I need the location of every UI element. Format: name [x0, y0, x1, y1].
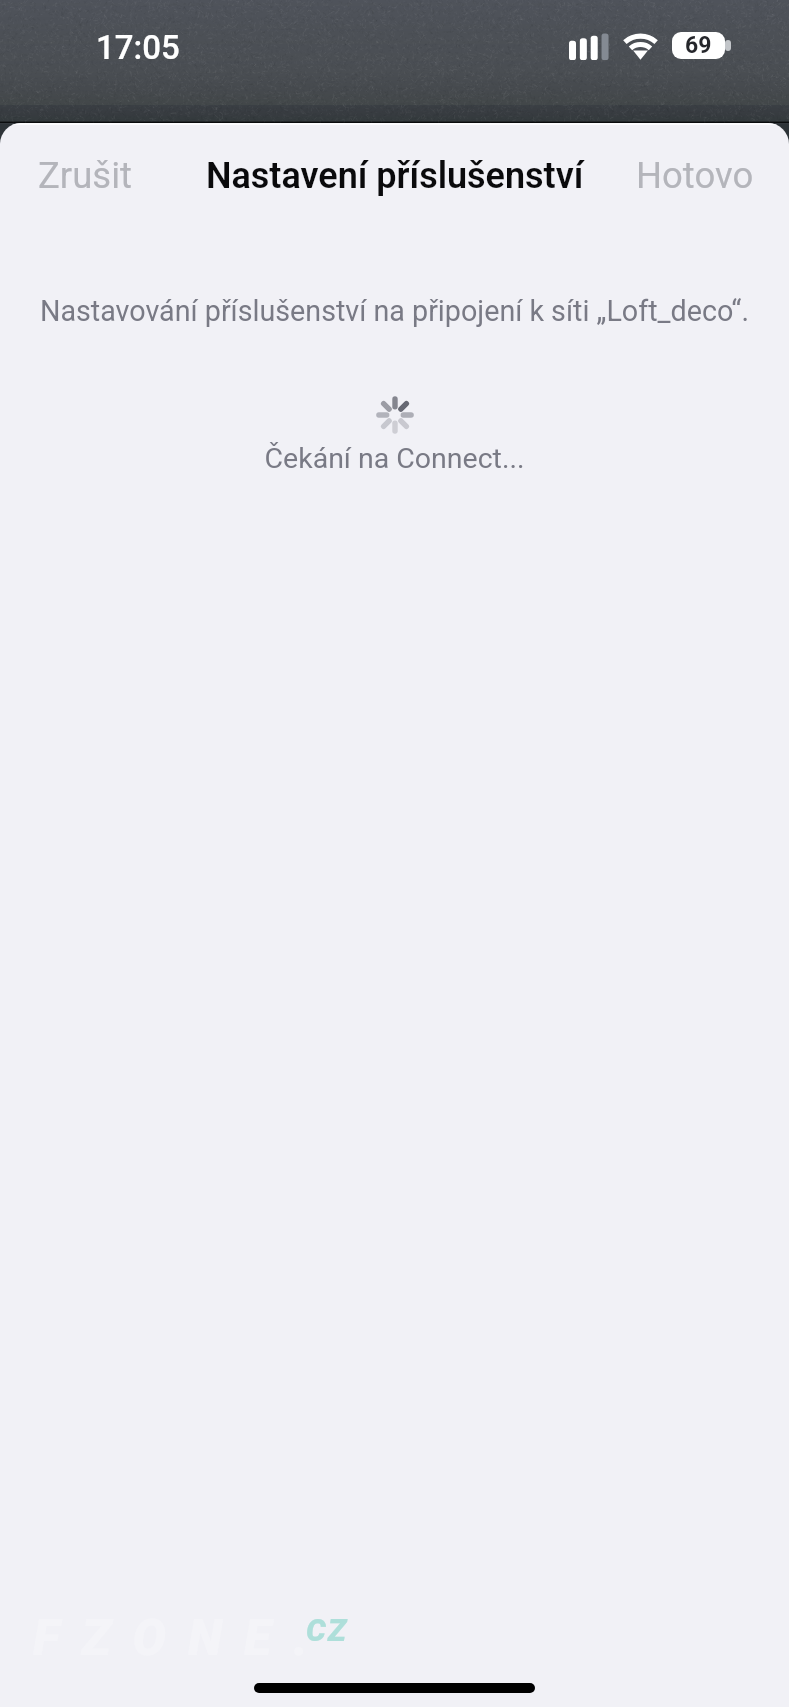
staticText: FZONE. — [33, 1609, 330, 1668]
staticText: 69 — [685, 32, 712, 59]
staticText: Zrušit — [38, 154, 133, 197]
button[interactable]: Hotovo — [614, 123, 789, 223]
staticText: Nastavování příslušenství na připojení k… — [16, 294, 773, 328]
other: Wi-Fi connected — [623, 32, 658, 60]
other: Battery 69 percent — [672, 32, 725, 59]
staticText: CZ — [306, 1612, 349, 1648]
other: Cellular signal strength — [569, 33, 609, 60]
staticText: Čekání na Connect... — [0, 442, 789, 475]
staticText: 17:05 — [96, 28, 180, 67]
staticText: Nastavení příslušenství — [206, 155, 584, 197]
button[interactable]: Zrušit — [0, 123, 155, 223]
staticText: Hotovo — [636, 154, 754, 197]
other: Loading — [376, 396, 414, 434]
